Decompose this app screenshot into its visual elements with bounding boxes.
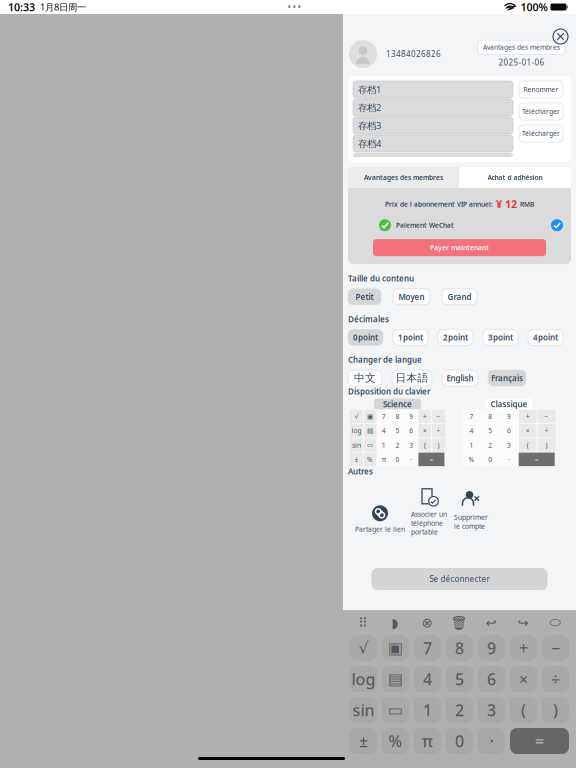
staticText: 1月8日周一 — [40, 1, 86, 13]
staticText: ) — [553, 699, 558, 721]
button[interactable]: Achat d adhésion — [459, 167, 571, 188]
staticText: ▤ — [367, 427, 373, 435]
staticText: ÷ — [544, 426, 548, 435]
staticText: Autres — [348, 466, 373, 477]
button[interactable]: 日本語 — [392, 370, 432, 386]
staticText: + — [519, 637, 528, 659]
button[interactable]: 中文 — [348, 370, 382, 386]
button[interactable]: 3point — [483, 329, 518, 345]
staticText: 1 — [382, 441, 386, 449]
button[interactable]: 4point — [528, 329, 563, 345]
staticText: + — [423, 412, 427, 421]
staticText: • • • — [288, 2, 301, 12]
staticText: 存档2 — [358, 101, 381, 114]
staticText: Moyen — [398, 291, 424, 302]
staticText: Se déconnecter — [429, 574, 489, 584]
staticText: Renommer — [523, 85, 558, 94]
staticText: √ — [354, 413, 358, 420]
staticText: = — [535, 730, 544, 752]
staticText: ↩ — [485, 615, 496, 630]
staticText: 3 — [487, 699, 496, 721]
button[interactable]: Petit — [348, 289, 381, 305]
staticText: 3 — [409, 441, 413, 449]
staticText: − — [544, 412, 548, 421]
button[interactable]: Partager le lien — [353, 479, 407, 534]
staticText: English — [446, 373, 473, 383]
staticText: Télécharger — [522, 129, 560, 138]
staticText: 9 — [487, 637, 496, 659]
button[interactable]: Science — [374, 399, 421, 410]
staticText: 10:33 — [8, 0, 35, 14]
staticText: · — [508, 455, 510, 464]
staticText: ⬭ — [549, 616, 560, 629]
button[interactable]: 0point — [348, 329, 383, 345]
staticText: − — [437, 412, 441, 421]
staticText: × — [519, 668, 528, 690]
staticText: 2 — [455, 699, 464, 721]
staticText: 4point — [533, 332, 558, 343]
button[interactable]: Grand — [442, 289, 477, 305]
staticText: 存档4 — [358, 137, 381, 150]
button[interactable]: Classique — [485, 399, 532, 410]
button[interactable]: English — [442, 370, 478, 386]
button[interactable]: Renommer — [519, 81, 563, 98]
staticText: 存档1 — [358, 83, 381, 96]
button[interactable]: 存档4 — [353, 135, 513, 152]
staticText: Supprimer le compte — [454, 513, 488, 530]
button[interactable]: 存档1 — [353, 81, 513, 98]
staticText: Grand — [447, 291, 471, 302]
staticText: Taille du contenu — [348, 273, 414, 284]
staticText: % — [469, 455, 475, 464]
staticText: ▤ — [388, 670, 403, 688]
staticText: Classique — [490, 399, 527, 409]
staticText: 7 — [382, 412, 386, 421]
staticText: Télécharger — [522, 107, 560, 116]
button[interactable]: Associer un téléphone portable — [408, 479, 450, 536]
button[interactable]: Télécharger — [519, 125, 563, 142]
staticText: ± — [354, 455, 358, 464]
button[interactable]: 2point — [438, 329, 473, 345]
button[interactable]: Payer maintenant — [373, 239, 546, 256]
staticText: Science — [383, 399, 412, 409]
staticText: 2point — [443, 332, 468, 343]
staticText: ) — [545, 441, 547, 449]
staticText: 100% — [520, 0, 547, 14]
button[interactable]: Moyen — [393, 289, 430, 305]
button[interactable]: 存档2 — [353, 99, 513, 116]
staticText: 3point — [488, 332, 513, 343]
staticText: log — [351, 426, 361, 435]
staticText: % — [388, 730, 402, 752]
staticText: 0 — [488, 455, 492, 464]
staticText: ) — [438, 441, 440, 449]
staticText: 0 — [455, 730, 464, 752]
staticText: sin — [352, 699, 374, 721]
staticText: 6 — [507, 426, 511, 435]
staticText: RMB — [520, 200, 534, 209]
staticText: Paiement WeChat — [396, 221, 454, 230]
staticText: 1 — [423, 699, 432, 721]
staticText: × — [526, 426, 530, 435]
button[interactable]: 存档3 — [353, 117, 513, 134]
staticText: ▭ — [388, 701, 403, 719]
staticText: Français — [491, 373, 523, 383]
staticText: 日本語 — [395, 371, 428, 385]
staticText: ⊗ — [421, 615, 432, 630]
button[interactable]: Français — [488, 370, 526, 386]
staticText: log — [351, 668, 375, 690]
staticText: ± — [359, 730, 368, 752]
staticText: · — [410, 455, 412, 464]
button[interactable]: Supprimer le compte — [451, 479, 491, 530]
staticText: Partager le lien — [355, 525, 405, 534]
button[interactable]: 1point — [393, 329, 428, 345]
staticText: 1 — [470, 441, 474, 449]
staticText: 7 — [470, 412, 474, 421]
button[interactable]: Télécharger — [519, 103, 563, 120]
button[interactable]: Se déconnecter — [371, 568, 547, 590]
staticText: 2 — [488, 441, 492, 449]
button[interactable]: Fermer — [553, 22, 571, 44]
staticText: Associer un téléphone portable — [411, 510, 447, 536]
staticText: Avantages des membres — [483, 43, 560, 52]
button[interactable]: Avantages des membres — [348, 167, 459, 188]
staticText: ⠿ — [358, 615, 368, 630]
staticText: Décimales — [348, 314, 389, 324]
